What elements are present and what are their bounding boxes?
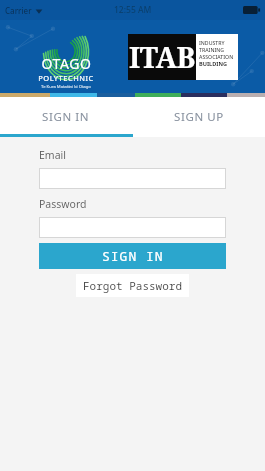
staticText: ITAB xyxy=(129,38,195,76)
staticText: Forgot Password xyxy=(83,278,182,293)
staticText: Email xyxy=(39,148,66,162)
button[interactable]: Forgot Password xyxy=(76,274,189,297)
staticText: OTAGO xyxy=(41,54,92,73)
staticText: SIGN IN xyxy=(102,247,164,265)
button[interactable] xyxy=(39,217,226,238)
button[interactable]: SIGN IN xyxy=(0,97,132,137)
button[interactable]: SIGN IN xyxy=(39,243,226,269)
staticText: BUILDING xyxy=(199,60,228,68)
staticText: Te Kura Matatini ki Otago xyxy=(41,84,91,90)
staticText: ASSOCIATION xyxy=(199,53,234,60)
staticText: POLYTECHNIC xyxy=(38,73,94,83)
button[interactable]: SIGN UP xyxy=(132,97,265,137)
staticText: SIGN UP xyxy=(174,109,224,125)
staticText: TRAINING xyxy=(199,46,225,53)
button[interactable] xyxy=(39,168,226,189)
staticText: INDUSTRY xyxy=(199,39,225,46)
staticText: SIGN IN xyxy=(42,109,90,125)
staticText: 12:55 AM xyxy=(114,4,152,16)
staticText: Password xyxy=(39,197,87,211)
staticText: Carrier xyxy=(5,5,32,16)
